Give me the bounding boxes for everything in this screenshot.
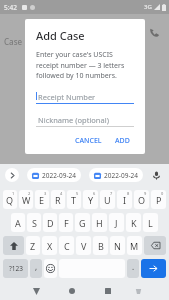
staticText: 8 <box>127 191 130 196</box>
button[interactable]: ?123 <box>3 259 28 278</box>
staticText: Y <box>88 194 94 206</box>
staticText: S <box>32 217 37 229</box>
staticText: L <box>148 217 153 229</box>
button[interactable]: Home <box>54 282 90 300</box>
staticText: D <box>47 217 54 229</box>
staticText: G <box>79 217 86 229</box>
staticText: H <box>96 217 103 229</box>
staticText: X <box>47 240 53 252</box>
button[interactable]: L <box>143 213 158 232</box>
staticText: 2022-09-24 <box>104 171 138 180</box>
button[interactable]: V <box>76 236 91 255</box>
staticText: 3 <box>44 191 47 196</box>
staticText: M <box>130 240 139 252</box>
button[interactable]: K <box>126 213 141 232</box>
staticText: C <box>64 240 70 252</box>
button[interactable]: N <box>110 236 125 255</box>
button[interactable]: O <box>134 190 149 209</box>
staticText: . <box>132 261 135 272</box>
button[interactable]: Shift <box>3 236 24 255</box>
button[interactable]: Y <box>83 190 98 209</box>
button[interactable]: . <box>127 259 139 278</box>
button[interactable]: W <box>19 190 33 209</box>
button[interactable]: CANCEL <box>71 133 106 149</box>
staticText: 5 <box>76 191 79 196</box>
staticText: MC Law Group <box>44 27 100 38</box>
button[interactable]: More suggestions <box>5 168 19 182</box>
button[interactable]: F <box>59 213 73 232</box>
staticText: Nickname (optional) <box>38 115 109 125</box>
button[interactable]: Emoji <box>44 259 57 278</box>
staticText: E <box>39 194 45 206</box>
button[interactable]: E <box>35 190 49 209</box>
staticText: U <box>104 194 111 206</box>
staticText: Enter your case's USCIS receipt number —… <box>36 50 134 80</box>
button[interactable]: ADD <box>111 133 134 149</box>
staticText: CANCEL <box>75 136 102 146</box>
staticText: 4 <box>60 191 63 196</box>
button[interactable]: Recents <box>90 282 126 300</box>
button[interactable]: B <box>93 236 108 255</box>
staticText: 2022-09-24 <box>42 171 76 180</box>
staticText: ADD <box>115 136 130 146</box>
button[interactable]: G <box>75 213 90 232</box>
staticText: , <box>35 261 38 272</box>
button[interactable]: R <box>51 190 65 209</box>
button[interactable]: Enter <box>141 259 166 278</box>
staticText: N <box>114 240 121 252</box>
button[interactable]: Nickname (optional) <box>36 113 134 127</box>
button[interactable]: Q <box>3 190 17 209</box>
staticText: R <box>55 194 61 206</box>
staticText: J <box>115 217 118 229</box>
button[interactable]: S <box>27 213 41 232</box>
button[interactable]: 2022-09-24 <box>27 168 81 182</box>
staticText: T <box>71 194 77 206</box>
button[interactable]: C <box>59 236 74 255</box>
staticText: ?123 <box>9 264 23 273</box>
staticText: P <box>156 194 162 206</box>
button[interactable]: H <box>92 213 107 232</box>
button[interactable]: I <box>117 190 132 209</box>
button[interactable]: , <box>30 259 42 278</box>
button[interactable]: D <box>43 213 57 232</box>
staticText: 2 <box>28 191 31 196</box>
staticText: 6 <box>93 191 96 196</box>
staticText: Add Case <box>36 28 85 43</box>
staticText: W <box>22 194 31 206</box>
staticText: F <box>64 217 69 229</box>
staticText: V <box>81 240 87 252</box>
button[interactable]: 2022-09-24 <box>89 168 143 182</box>
button[interactable]: M <box>127 236 142 255</box>
button[interactable]: Voice input <box>149 168 163 182</box>
button[interactable]: Back <box>18 282 54 300</box>
staticText: Receipt Number <box>38 92 96 102</box>
button[interactable]: T <box>67 190 81 209</box>
staticText: O <box>138 194 146 206</box>
button[interactable]: Receipt Number <box>36 90 134 104</box>
button[interactable]: J <box>109 213 124 232</box>
button[interactable]: Z <box>26 236 40 255</box>
staticText: 0 <box>161 191 164 196</box>
staticText: 5:42 <box>4 3 17 12</box>
staticText: Z <box>30 240 36 252</box>
staticText: 9 <box>144 191 147 196</box>
staticText: Q <box>6 194 14 206</box>
button[interactable]: A <box>11 213 25 232</box>
button[interactable]: U <box>100 190 115 209</box>
button[interactable]: P <box>151 190 166 209</box>
staticText: Case <box>4 36 23 47</box>
button[interactable]: Backspace <box>144 236 166 255</box>
staticText: B <box>98 240 104 252</box>
button[interactable]: Switch keyboard <box>126 282 151 300</box>
staticText: 7 <box>110 191 113 196</box>
staticText: 3G <box>144 3 152 11</box>
staticText: K <box>131 217 137 229</box>
staticText: I <box>123 194 127 206</box>
staticText: 1 <box>12 191 15 196</box>
button[interactable]: X <box>42 236 57 255</box>
staticText: A <box>15 217 21 229</box>
button[interactable]: Call <box>145 23 163 41</box>
